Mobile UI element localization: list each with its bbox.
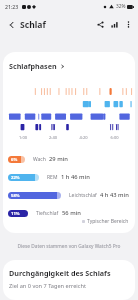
button[interactable]: 58% <box>8 186 135 204</box>
staticText: 21:23 <box>5 3 19 10</box>
staticText: 29 min <box>49 155 68 163</box>
staticText: Tiefschlaf <box>36 210 59 217</box>
staticText: Schlaf <box>20 19 46 31</box>
button[interactable]: 22% <box>8 168 135 186</box>
staticText: 1:00 <box>8 135 38 140</box>
staticText: 58% <box>11 193 20 199</box>
staticText: Schlafphasen <box>9 61 57 71</box>
staticText: Diese Daten stammen von Galaxy Watch5 Pr… <box>0 243 138 250</box>
staticText: 6% <box>11 157 18 163</box>
staticText: 1 h 46 min <box>61 173 90 181</box>
staticText: Leichtschlaf <box>69 192 97 199</box>
staticText: 56 min <box>62 209 81 217</box>
button[interactable]: Share <box>94 18 107 31</box>
staticText: Wach <box>33 156 46 163</box>
staticText: 4:20 <box>68 135 99 140</box>
staticText: 32% <box>116 3 126 10</box>
staticText: 11% <box>11 211 20 217</box>
staticText: Typischer Bereich <box>87 218 129 225</box>
staticText: Durchgängigkeit des Schlafs <box>9 268 111 278</box>
button[interactable]: More options <box>122 18 135 31</box>
button[interactable]: 6% <box>8 150 135 168</box>
staticText: 2:40 <box>38 135 68 140</box>
staticText: REM <box>47 174 58 181</box>
staticText: 6:00 <box>99 135 130 140</box>
staticText: 4 h 43 min <box>100 191 129 199</box>
staticText: Ziel an 0 von 7 Tagen erreicht <box>9 282 86 290</box>
button[interactable]: 11% <box>8 204 135 222</box>
button[interactable]: Schlafphasen <box>9 61 65 71</box>
staticText: 22% <box>11 175 20 181</box>
button[interactable]: Back <box>4 17 19 32</box>
button[interactable]: Statistics <box>108 18 121 31</box>
